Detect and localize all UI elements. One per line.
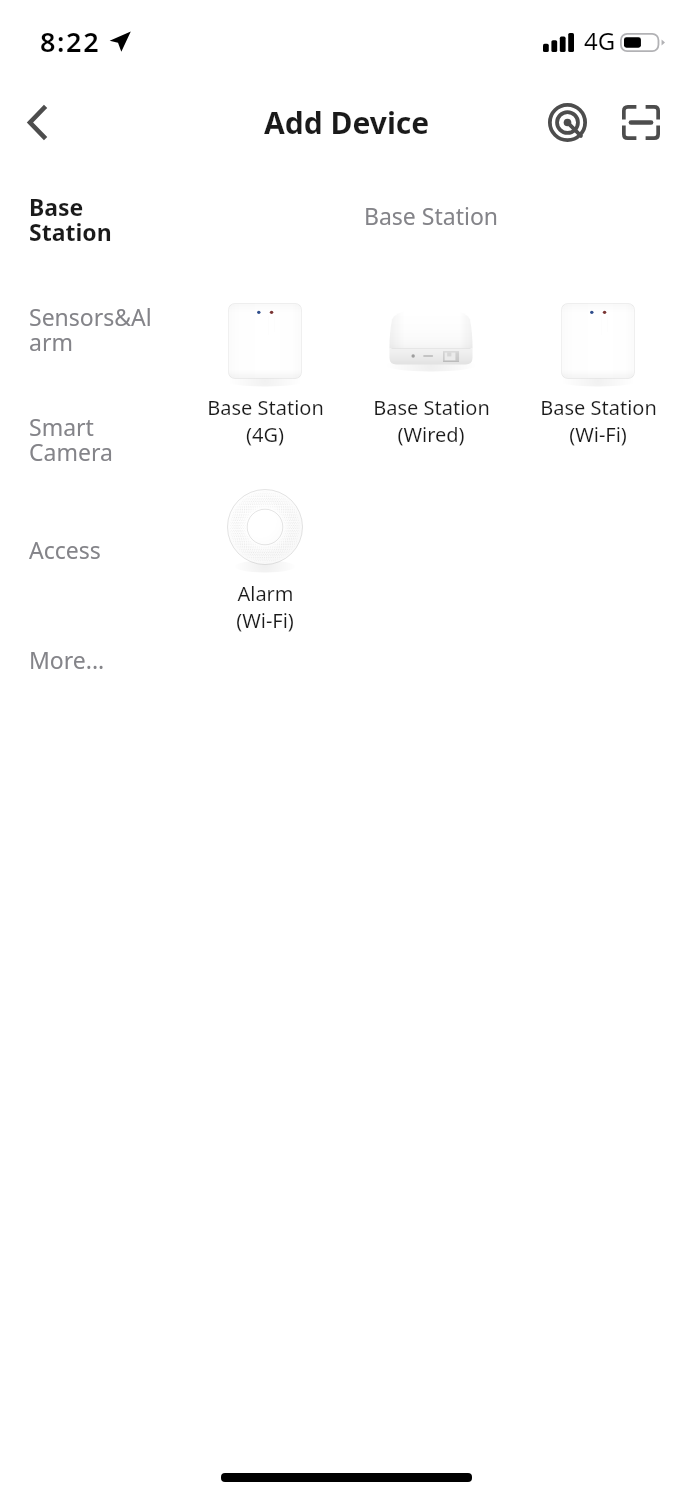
staticText: Smart Camera bbox=[29, 411, 157, 468]
button[interactable]: Alarm bbox=[182, 474, 348, 634]
button[interactable]: Sensors&Alarm bbox=[0, 274, 182, 384]
staticText: Base Station bbox=[373, 394, 490, 421]
staticText: (Wi-Fi) bbox=[236, 607, 294, 634]
staticText: Alarm bbox=[237, 580, 294, 607]
staticText: Add Device bbox=[264, 102, 430, 143]
button[interactable]: Base Station bbox=[182, 288, 348, 448]
staticText: More... bbox=[29, 644, 157, 675]
button[interactable]: Base Station bbox=[0, 164, 182, 274]
staticText: Base Station bbox=[29, 191, 157, 248]
button[interactable]: Access bbox=[0, 494, 182, 604]
button[interactable]: Discover nearby devices bbox=[539, 94, 595, 150]
staticText: (4G) bbox=[246, 421, 284, 448]
staticText: Base Station bbox=[540, 394, 657, 421]
button[interactable]: Smart Camera bbox=[0, 384, 182, 494]
staticText: Base Station bbox=[207, 394, 324, 421]
button[interactable]: Scan QR code bbox=[613, 94, 669, 150]
button[interactable]: Base Station bbox=[348, 288, 514, 448]
button[interactable]: More... bbox=[0, 604, 182, 714]
staticText: (Wi-Fi) bbox=[569, 421, 627, 448]
staticText: Base Station bbox=[364, 200, 499, 231]
staticText: Sensors&Alarm bbox=[29, 301, 157, 358]
staticText: (Wired) bbox=[397, 421, 465, 448]
staticText: Access bbox=[29, 534, 157, 565]
button[interactable]: Base Station bbox=[515, 288, 681, 448]
staticText: 8:22 bbox=[40, 23, 101, 60]
staticText: 4G bbox=[584, 24, 616, 57]
button[interactable]: Back bbox=[9, 94, 65, 150]
